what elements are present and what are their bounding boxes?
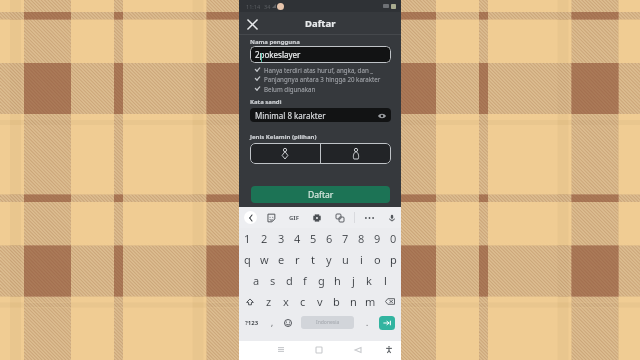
button[interactable]: Recents	[273, 344, 289, 355]
button[interactable]: 0	[385, 228, 401, 249]
staticText: t	[311, 252, 315, 267]
button[interactable]: t	[305, 249, 321, 270]
staticText: 3	[278, 231, 285, 246]
staticText: 9	[374, 231, 381, 246]
button[interactable]: h	[329, 270, 345, 291]
staticText: Kata sandi	[250, 98, 282, 106]
button[interactable]: o	[369, 249, 385, 270]
button[interactable]: 4	[289, 228, 305, 249]
staticText: s	[270, 273, 276, 288]
button[interactable]: Backspace	[379, 291, 401, 312]
button[interactable]: m	[362, 291, 379, 312]
button[interactable]: .	[361, 312, 374, 333]
staticText: 11:14	[246, 3, 261, 10]
staticText: f	[303, 273, 307, 288]
staticText: j	[352, 273, 355, 288]
button[interactable]: 6	[321, 228, 337, 249]
button[interactable]: Settings	[311, 207, 323, 228]
button[interactable]: Back	[350, 344, 366, 355]
button[interactable]: x	[277, 291, 294, 312]
staticText: n	[350, 294, 357, 309]
button[interactable]: q	[239, 249, 256, 270]
staticText: 2	[261, 231, 268, 246]
button[interactable]: Enter	[379, 316, 395, 330]
staticText: Daftar	[308, 189, 334, 201]
staticText: ?123	[245, 319, 259, 327]
button[interactable]: GIF	[288, 207, 300, 228]
button[interactable]: Voice input	[386, 207, 398, 228]
button[interactable]: s	[265, 270, 281, 291]
button[interactable]: l	[377, 270, 393, 291]
button[interactable]: 2	[256, 228, 273, 249]
button[interactable]: n	[345, 291, 362, 312]
staticText: Indonesia	[316, 319, 340, 326]
staticText: q	[244, 252, 251, 267]
button[interactable]: 1	[239, 228, 256, 249]
staticText: v	[317, 294, 323, 309]
button[interactable]: Indonesia	[301, 316, 354, 329]
button[interactable]: y	[321, 249, 337, 270]
staticText: 34	[264, 3, 271, 10]
staticText: l	[384, 273, 387, 288]
button[interactable]: 8	[353, 228, 369, 249]
staticText: d	[286, 273, 293, 288]
staticText: w	[260, 252, 269, 267]
staticText: o	[374, 252, 381, 267]
button[interactable]: Close	[244, 16, 260, 32]
staticText: z	[266, 294, 272, 309]
staticText: h	[334, 273, 341, 288]
button[interactable]: ?123	[242, 312, 261, 333]
button[interactable]: 5	[305, 228, 321, 249]
button[interactable]: 2pokeslayer	[250, 46, 391, 63]
button[interactable]: w	[256, 249, 273, 270]
staticText: GIF	[289, 214, 299, 222]
staticText: 1	[244, 231, 251, 246]
staticText: 6	[326, 231, 333, 246]
button[interactable]: Translate	[334, 207, 346, 228]
button[interactable]: 9	[369, 228, 385, 249]
staticText: 8	[358, 231, 365, 246]
staticText: 7	[342, 231, 349, 246]
button[interactable]: g	[313, 270, 329, 291]
button[interactable]: Perempuan	[321, 143, 391, 164]
staticText: g	[318, 273, 325, 288]
button[interactable]: Daftar	[251, 186, 390, 203]
button[interactable]: Emoji	[280, 312, 295, 333]
button[interactable]: Shift	[239, 291, 260, 312]
button[interactable]: 7	[337, 228, 353, 249]
button[interactable]: ,	[266, 312, 279, 333]
button[interactable]: f	[297, 270, 313, 291]
staticText: 2pokeslayer	[255, 49, 301, 60]
staticText: Belum digunakan	[264, 85, 316, 93]
button[interactable]: Minimal 8 karakter	[250, 108, 391, 122]
button[interactable]: 3	[273, 228, 289, 249]
staticText: p	[390, 252, 397, 267]
button[interactable]: r	[289, 249, 305, 270]
button[interactable]: a	[248, 270, 265, 291]
staticText: e	[278, 252, 285, 267]
button[interactable]: e	[273, 249, 289, 270]
button[interactable]: Home	[311, 344, 327, 355]
staticText: Panjangnya antara 3 hingga 20 karakter	[264, 75, 381, 83]
button[interactable]: More options	[363, 207, 375, 228]
staticText: ,	[271, 317, 274, 328]
staticText: 5	[310, 231, 317, 246]
button[interactable]: Stickers	[265, 207, 277, 228]
staticText: 4	[294, 231, 301, 246]
button[interactable]: u	[337, 249, 353, 270]
button[interactable]: k	[361, 270, 377, 291]
button[interactable]: b	[328, 291, 345, 312]
button[interactable]: Back	[244, 211, 257, 224]
staticText: Daftar	[305, 17, 336, 30]
button[interactable]: d	[281, 270, 297, 291]
button[interactable]: v	[311, 291, 328, 312]
button[interactable]: Accessibility	[381, 344, 397, 355]
button[interactable]: p	[385, 249, 401, 270]
button[interactable]: Laki-laki	[250, 143, 320, 164]
button[interactable]: i	[353, 249, 369, 270]
staticText: c	[300, 294, 306, 309]
button[interactable]: j	[345, 270, 361, 291]
button[interactable]: z	[260, 291, 277, 312]
staticText: Nama pengguna	[250, 38, 300, 46]
button[interactable]: c	[294, 291, 311, 312]
